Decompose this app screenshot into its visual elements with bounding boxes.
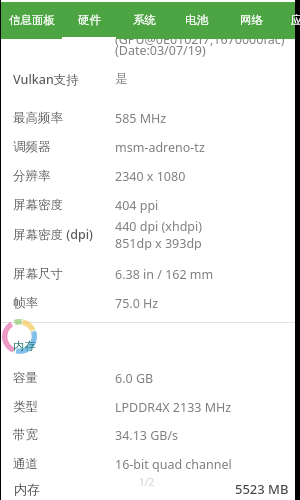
staticText: 34.13 GB/s bbox=[115, 427, 179, 444]
staticText: 帧率 bbox=[13, 295, 38, 311]
staticText: 屏幕尺寸 bbox=[13, 266, 63, 282]
staticText: LPDDR4X 2133 MHz bbox=[115, 399, 232, 416]
button[interactable]: 硬件 bbox=[63, 2, 115, 37]
button[interactable]: (GPU@0E0102f7,1670000fac) bbox=[1, 28, 295, 50]
button[interactable]: 带宽 bbox=[1, 424, 295, 446]
staticText: 404 ppi bbox=[115, 197, 159, 214]
button[interactable]: 最高频率 bbox=[1, 107, 295, 129]
staticText: 调频器 bbox=[13, 139, 51, 155]
staticText: 类型 bbox=[13, 399, 38, 415]
staticText: 硬件 bbox=[78, 13, 101, 27]
staticText: 电池 bbox=[185, 13, 208, 27]
button[interactable]: 屏幕密度 bbox=[1, 194, 295, 216]
staticText: 容量 bbox=[13, 370, 38, 386]
button[interactable]: Vulkan支持 bbox=[1, 68, 295, 90]
staticText: 应用 bbox=[291, 13, 300, 27]
staticText: 网络 bbox=[240, 13, 263, 27]
button[interactable]: 屏幕尺寸 bbox=[1, 263, 295, 285]
staticText: 最高频率 bbox=[13, 110, 63, 126]
staticText: (GPU@0E0102f7,1670000fac) bbox=[115, 31, 285, 48]
button[interactable]: 类型 bbox=[1, 396, 295, 418]
staticText: 75.0 Hz bbox=[115, 295, 159, 312]
button[interactable]: 通道 bbox=[1, 453, 295, 475]
staticText: 是 bbox=[115, 71, 128, 87]
staticText: 851dp x 393dp bbox=[115, 235, 202, 250]
button[interactable]: 帧率 bbox=[1, 292, 295, 314]
button[interactable]: 调频器 bbox=[1, 136, 295, 158]
staticText: 屏幕密度 (dpi) bbox=[13, 226, 93, 243]
staticText: 1/2 bbox=[139, 475, 155, 489]
staticText: 16-bit quad channel bbox=[115, 456, 232, 473]
button[interactable]: (Date:03/07/19) bbox=[1, 39, 295, 61]
button[interactable]: 容量 bbox=[1, 367, 295, 389]
staticText: 5523 MB bbox=[235, 480, 289, 498]
button[interactable]: 信息面板 bbox=[6, 2, 58, 37]
button[interactable]: 屏幕密度 (dpi) bbox=[1, 218, 295, 250]
staticText: 信息面板 bbox=[9, 13, 55, 27]
staticText: 6.38 in / 162 mm bbox=[115, 266, 214, 283]
staticText: (Date:03/07/19) bbox=[115, 42, 206, 59]
button[interactable]: 系统 bbox=[118, 2, 170, 37]
button[interactable]: 电池 bbox=[170, 2, 222, 37]
staticText: 通道 bbox=[13, 456, 38, 472]
staticText: 6.0 GB bbox=[115, 370, 154, 387]
button[interactable]: 分辨率 bbox=[1, 165, 295, 187]
button[interactable]: 网络 bbox=[225, 2, 277, 37]
staticText: 系统 bbox=[133, 13, 156, 27]
staticText: 屏幕密度 bbox=[13, 197, 63, 213]
staticText: 440 dpi (xhdpi) bbox=[115, 218, 202, 235]
staticText: 内存 bbox=[14, 481, 40, 497]
staticText: Vulkan支持 bbox=[13, 71, 79, 88]
staticText: 2340 x 1080 bbox=[115, 168, 186, 185]
staticText: 带宽 bbox=[13, 427, 38, 443]
button[interactable]: 应用 bbox=[276, 2, 300, 37]
staticText: 585 MHz bbox=[115, 110, 167, 127]
staticText: msm-adreno-tz bbox=[115, 139, 205, 156]
staticText: 内存 bbox=[13, 339, 36, 353]
staticText: 分辨率 bbox=[13, 168, 51, 184]
